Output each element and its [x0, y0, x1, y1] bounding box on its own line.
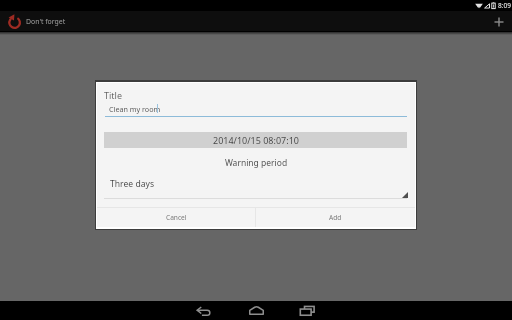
button[interactable]: Back: [186, 301, 222, 320]
staticText: Cancel: [166, 213, 187, 222]
button[interactable]: Three days: [104, 175, 407, 199]
button[interactable]: Home: [238, 301, 274, 320]
staticText: Three days: [110, 178, 155, 190]
button[interactable]: 2014/10/15 08:07:10: [104, 132, 407, 148]
button[interactable]: Cancel: [97, 208, 255, 227]
button[interactable]: Recent apps: [289, 301, 325, 320]
button[interactable]: Add: [488, 11, 509, 32]
staticText: Add: [329, 213, 342, 222]
button[interactable]: Add: [256, 208, 415, 227]
staticText: Don't forget: [26, 17, 66, 26]
staticText: Warning period: [97, 157, 415, 169]
staticText: 2014/10/15 08:07:10: [213, 134, 299, 146]
staticText: 8:09: [498, 1, 511, 10]
staticText: Title: [104, 89, 122, 101]
staticText: Clean my room: [109, 104, 161, 114]
